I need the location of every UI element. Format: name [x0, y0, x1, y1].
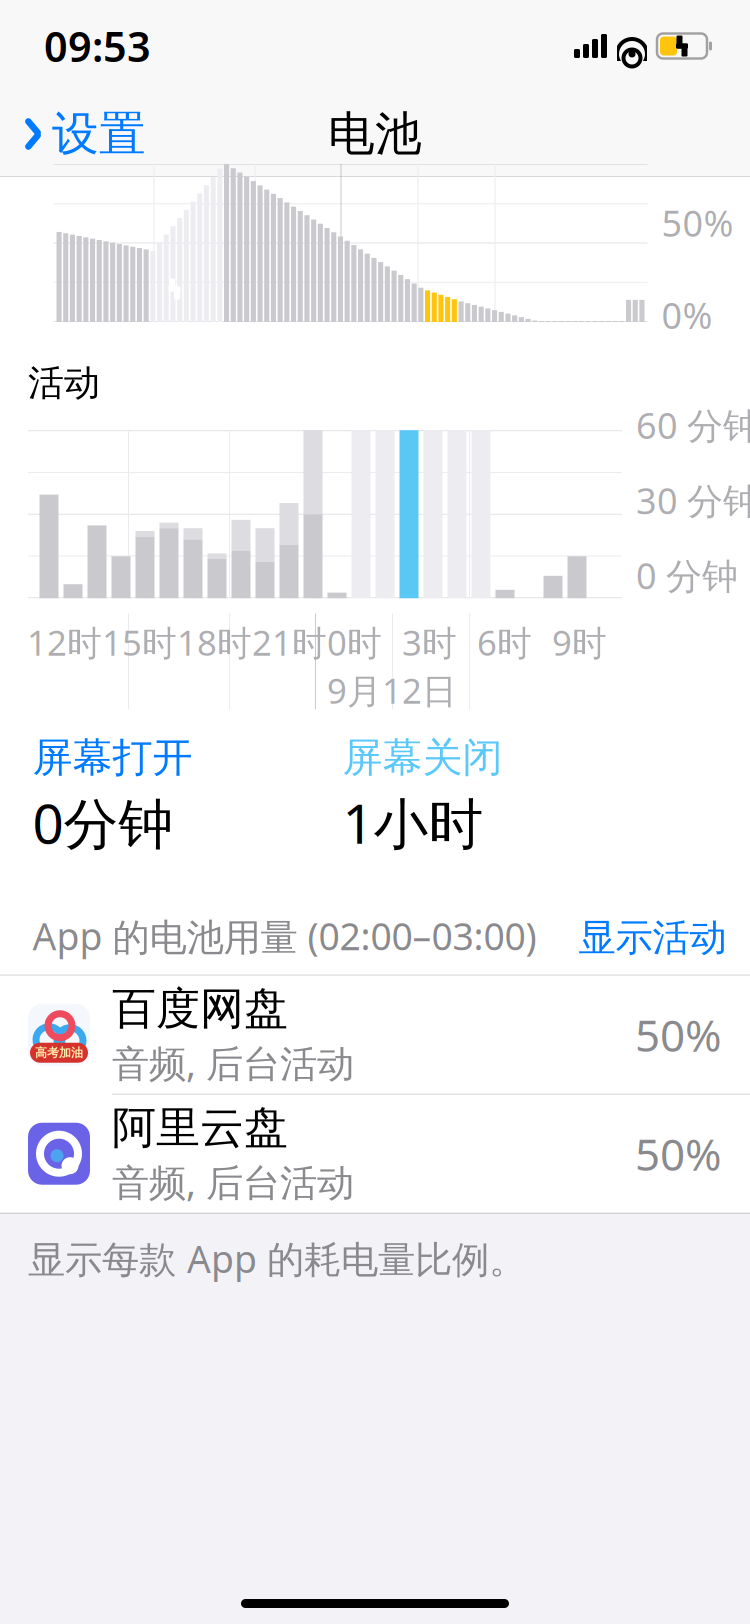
- staticText: 9月12日: [327, 667, 457, 713]
- staticText: 3时: [402, 619, 457, 665]
- staticText: 9时: [552, 619, 607, 665]
- staticText: 电池: [328, 105, 422, 163]
- staticText: 显示活动: [578, 915, 726, 961]
- staticText: 60 分钟: [636, 401, 750, 449]
- staticText: 设置: [52, 105, 146, 163]
- staticText: 12时: [27, 619, 102, 665]
- staticText: 活动: [28, 361, 100, 405]
- staticText: 显示每款 App 的耗电量比例。: [28, 1234, 526, 1283]
- staticText: 30 分钟: [636, 476, 750, 524]
- staticText: 音频, 后台活动: [112, 1157, 354, 1206]
- staticText: 百度网盘: [112, 982, 288, 1036]
- staticText: 1小时: [342, 786, 483, 859]
- staticText: App 的电池用量 (02:00–03:00): [32, 911, 536, 961]
- button[interactable]: 设置: [0, 95, 146, 173]
- staticText: 0分钟: [32, 786, 173, 859]
- staticText: 09:53: [44, 19, 151, 73]
- staticText: 50%: [661, 199, 733, 247]
- button[interactable]: 显示活动: [578, 915, 726, 961]
- button[interactable]: 阿里云盘: [0, 1095, 750, 1213]
- staticText: 50%: [635, 1005, 722, 1064]
- staticText: 15时: [102, 619, 177, 665]
- staticText: 屏幕关闭: [342, 733, 502, 782]
- staticText: 18时: [177, 619, 252, 665]
- staticText: 0 分钟: [636, 551, 738, 599]
- staticText: 音频, 后台活动: [112, 1038, 354, 1087]
- staticText: 阿里云盘: [112, 1101, 288, 1155]
- staticText: 21时: [252, 619, 327, 665]
- staticText: 高考加油: [35, 1045, 83, 1060]
- staticText: 0%: [661, 291, 712, 339]
- staticText: 0时: [327, 619, 382, 665]
- staticText: 屏幕打开: [32, 733, 192, 782]
- staticText: 6时: [477, 619, 532, 665]
- button[interactable]: 高考加油: [0, 976, 750, 1094]
- staticText: 50%: [635, 1124, 722, 1183]
